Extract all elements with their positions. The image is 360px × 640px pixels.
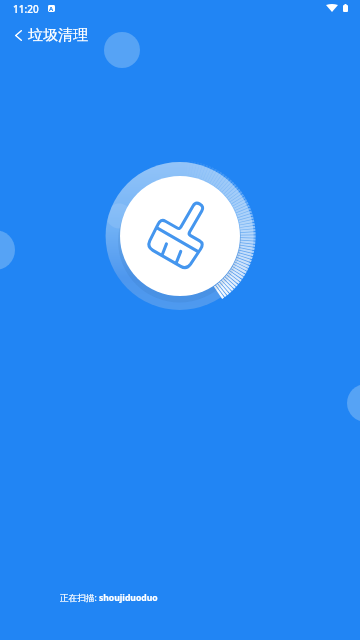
button[interactable]: Back bbox=[6, 23, 30, 47]
staticText: 垃圾清理 bbox=[28, 26, 88, 45]
staticText: 正在扫描: shoujiduoduo bbox=[60, 592, 158, 604]
staticText: 11:20 bbox=[13, 2, 39, 16]
staticText: A bbox=[49, 5, 54, 12]
button[interactable]: Start junk clean scan bbox=[120, 176, 240, 296]
